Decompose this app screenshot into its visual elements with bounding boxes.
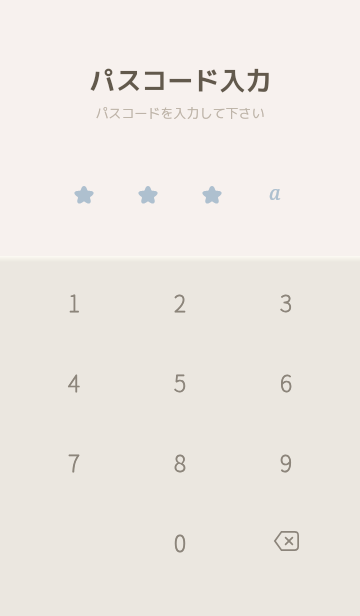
- staticText: 6: [280, 365, 292, 398]
- button[interactable]: 5: [127, 343, 233, 423]
- button[interactable]: 6: [233, 343, 339, 423]
- staticText: 4: [68, 365, 80, 398]
- other: Entered digit: [116, 178, 180, 212]
- other: Cursor: [244, 178, 308, 212]
- staticText: 8: [174, 445, 186, 478]
- staticText: 1: [68, 285, 80, 318]
- other: Entered digit: [52, 178, 116, 212]
- button[interactable]: 3: [233, 263, 339, 343]
- staticText: 7: [68, 445, 80, 478]
- button[interactable]: 9: [233, 423, 339, 503]
- staticText: 2: [174, 285, 186, 318]
- staticText: パスコード入力: [89, 62, 272, 98]
- button[interactable]: 2: [127, 263, 233, 343]
- staticText: パスコードを入力して下さい: [95, 104, 265, 122]
- other: Backspace: [264, 519, 308, 563]
- staticText: 4: [68, 365, 80, 398]
- staticText: 3: [280, 285, 292, 318]
- staticText: 1: [68, 285, 80, 318]
- staticText: 8: [174, 445, 186, 478]
- button[interactable]: Backspace: [233, 503, 339, 583]
- staticText: 0: [174, 525, 186, 558]
- staticText: 0: [174, 525, 186, 558]
- staticText: 7: [68, 445, 80, 478]
- button[interactable]: 0: [127, 503, 233, 583]
- button[interactable]: 1: [21, 263, 127, 343]
- staticText: a: [269, 180, 281, 206]
- staticText: 9: [280, 445, 292, 478]
- staticText: 5: [174, 365, 186, 398]
- button[interactable]: 4: [21, 343, 127, 423]
- staticText: 5: [174, 365, 186, 398]
- other: Entered digit: [180, 178, 244, 212]
- button[interactable]: 7: [21, 423, 127, 503]
- staticText: 6: [280, 365, 292, 398]
- staticText: 3: [280, 285, 292, 318]
- staticText: 2: [174, 285, 186, 318]
- button[interactable]: 8: [127, 423, 233, 503]
- staticText: 9: [280, 445, 292, 478]
